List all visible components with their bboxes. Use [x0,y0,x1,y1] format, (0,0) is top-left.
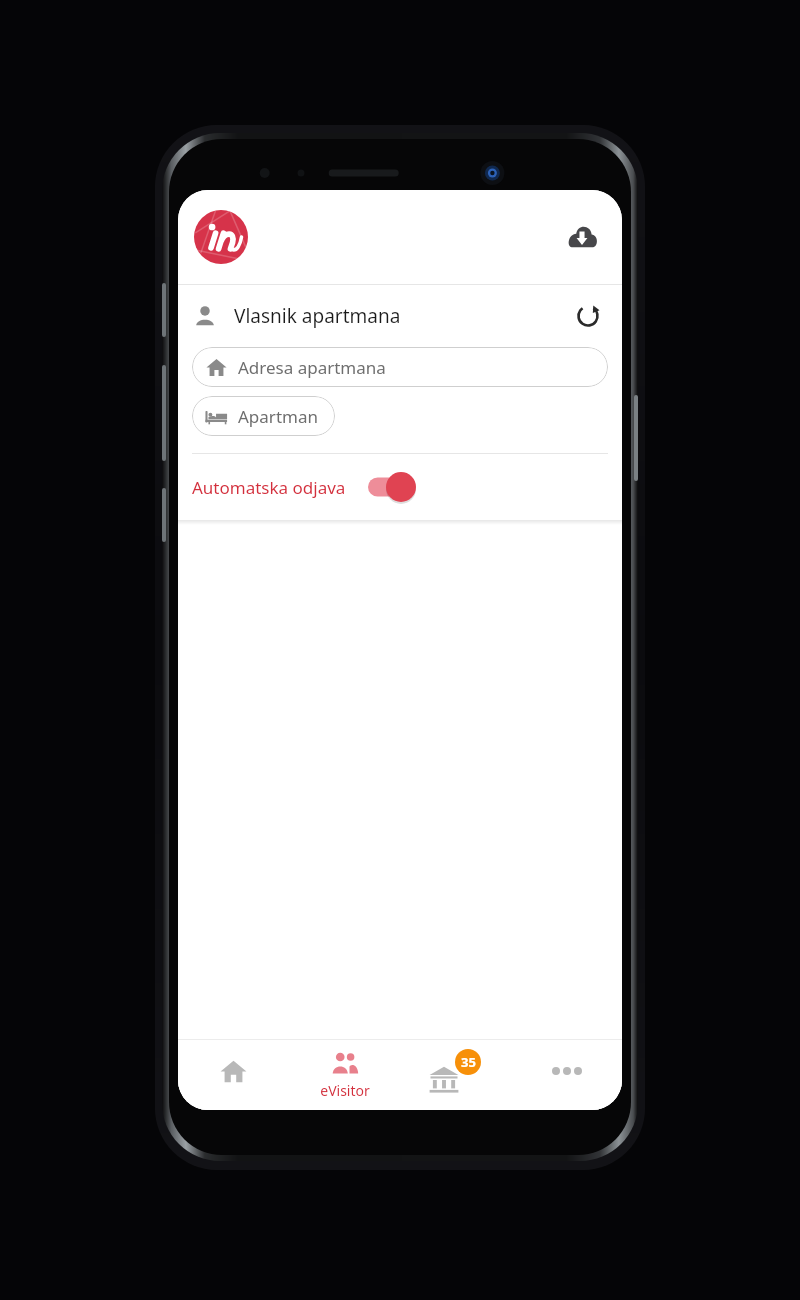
staticText: eVisitor [320,1081,370,1100]
staticText: Automatska odjava [192,476,346,499]
staticText: 35 [461,1053,476,1071]
button[interactable]: Automatska odjava [178,454,622,520]
button[interactable]: eVisitor [289,1040,400,1110]
button[interactable]: Vlasnik apartmana [178,285,622,347]
button[interactable]: Download [560,215,604,259]
button[interactable]: Logo [192,208,250,266]
button[interactable]: Adresa apartmana [192,347,608,387]
button[interactable]: Automatska odjava toggle [368,472,416,502]
button[interactable]: Institutions, 35 notifications [400,1040,511,1110]
button[interactable]: Home [178,1040,289,1110]
staticText: Apartman [238,405,318,428]
button[interactable]: Refresh [568,296,608,336]
button[interactable]: More options [511,1040,622,1110]
staticText: Adresa apartmana [238,356,386,379]
staticText: Vlasnik apartmana [234,303,401,329]
button[interactable]: Apartman [192,396,335,436]
